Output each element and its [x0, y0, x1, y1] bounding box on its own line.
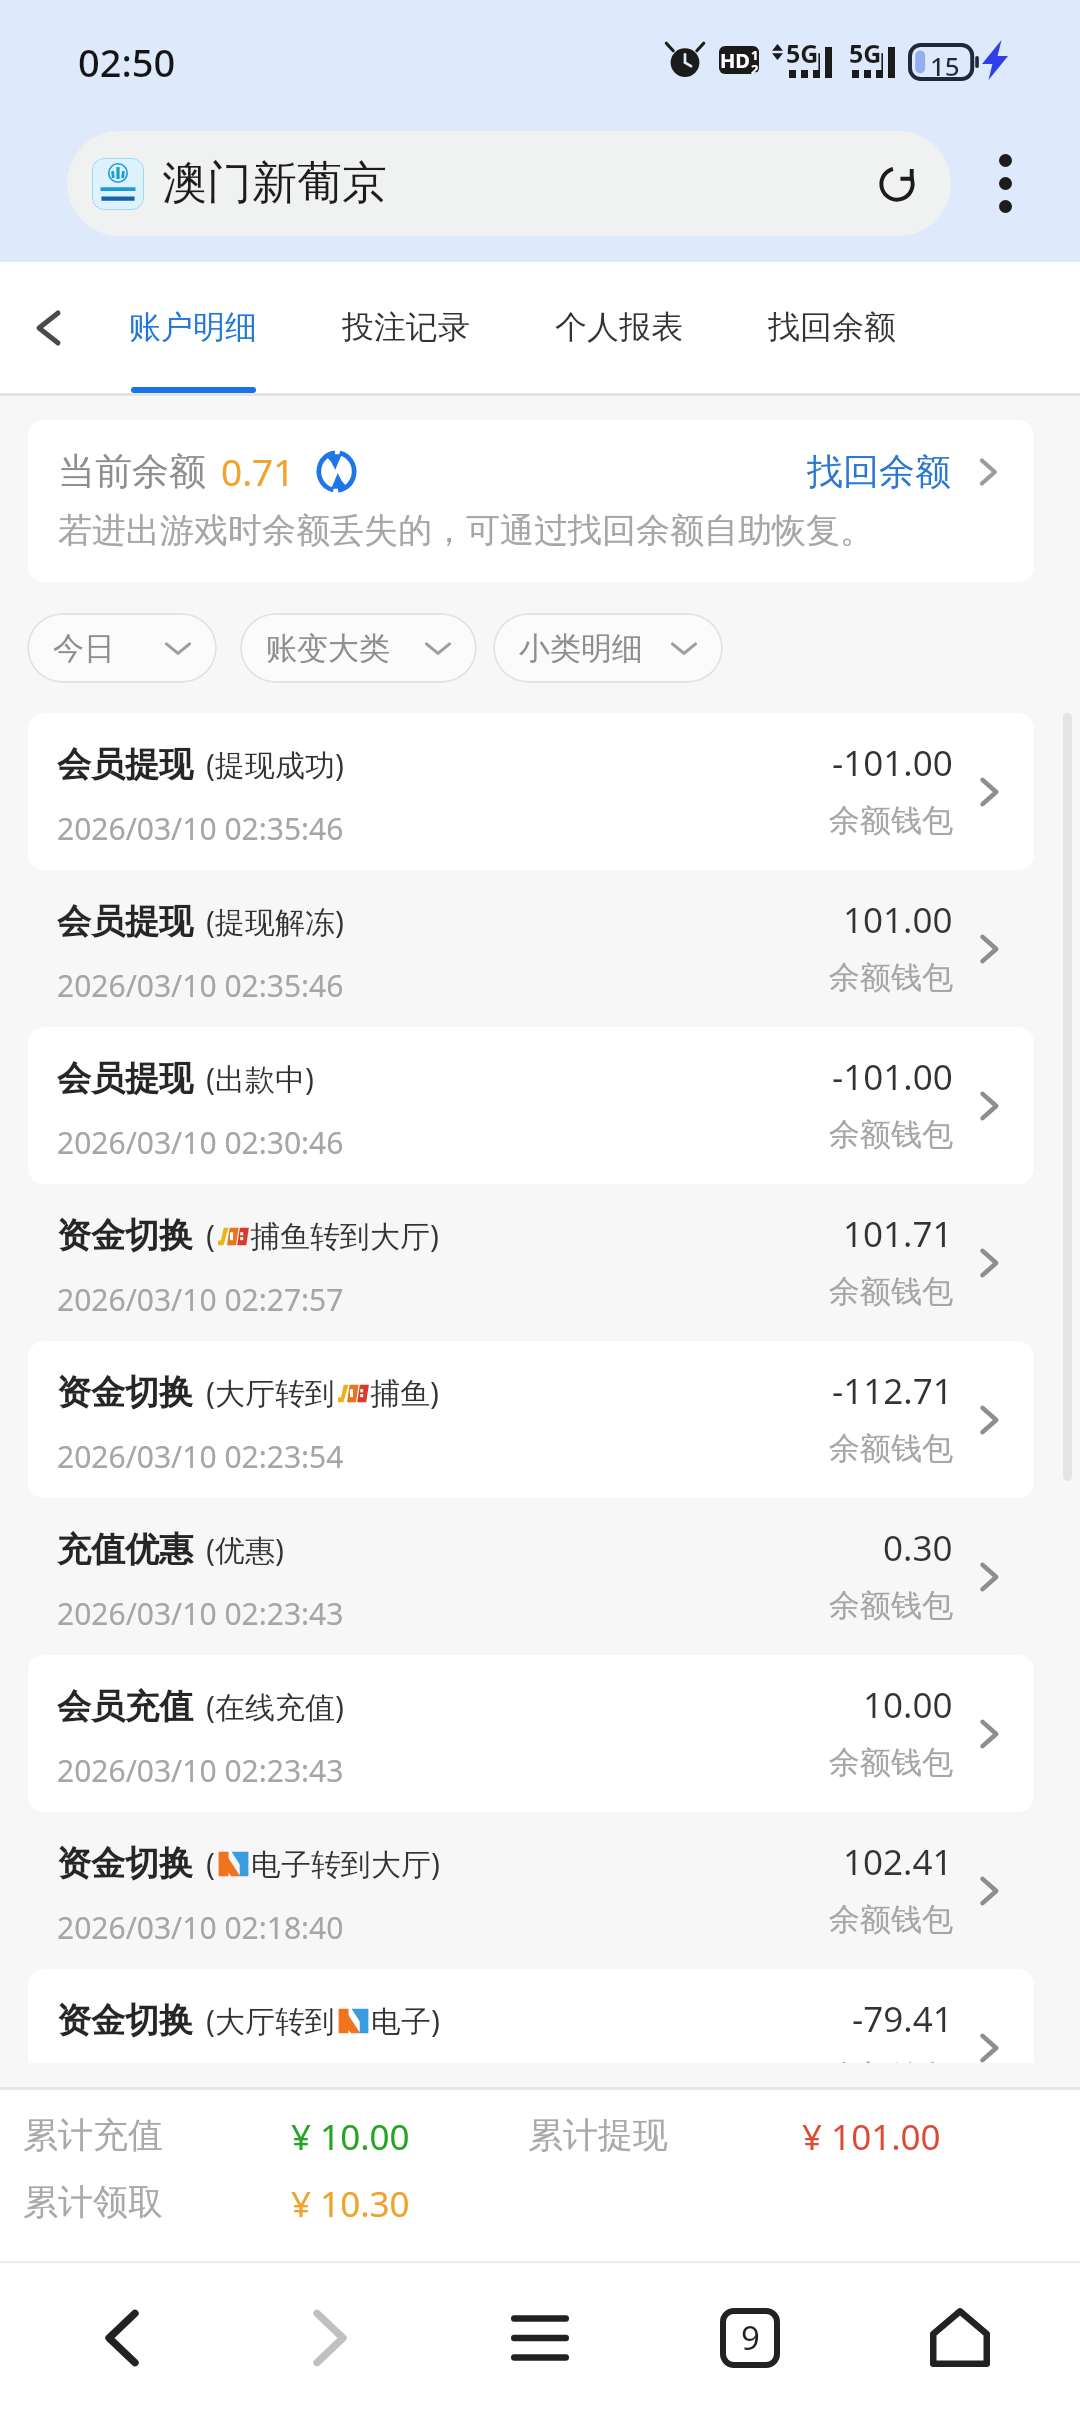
button[interactable]: 充值优惠: [28, 1498, 1034, 1655]
button[interactable]: 今日: [27, 613, 217, 683]
staticText: -101.00: [832, 739, 953, 787]
button[interactable]: Reload page: [859, 146, 935, 222]
staticText: 9: [741, 2315, 760, 2360]
staticText: 5G: [849, 36, 882, 70]
button[interactable]: 资金切换: [28, 1184, 1034, 1341]
staticText: 101.00: [843, 896, 953, 944]
staticText: (优惠): [206, 1529, 284, 1570]
staticText: 10.00: [863, 1681, 953, 1729]
staticText: 0.30: [883, 1524, 953, 1572]
staticText: 账变大类: [266, 629, 390, 668]
staticText: 捕鱼): [370, 1372, 439, 1413]
button[interactable]: 个人报表: [529, 262, 709, 393]
staticText: 102.41: [843, 1838, 953, 1886]
staticText: 余额钱包: [829, 1115, 953, 1154]
button[interactable]: 账变大类: [240, 613, 477, 683]
staticText: 2026/03/10 02:35:46: [57, 808, 344, 849]
staticText: -79.41: [852, 1995, 953, 2043]
staticText: (: [206, 1215, 215, 1256]
staticText: 02:50: [78, 36, 176, 88]
staticText: 2026/03/10 02:35:46: [57, 965, 344, 1006]
button[interactable]: 会员提现: [28, 1027, 1034, 1184]
button[interactable]: Home: [856, 2263, 1064, 2412]
staticText: 2026/03/10 02:30:46: [57, 1122, 344, 1163]
staticText: 账户明细: [129, 307, 257, 347]
staticText: 2026/03/10 02:23:54: [57, 1436, 344, 1477]
button[interactable]: Forward: [226, 2263, 434, 2412]
staticText: ¥ 10.30: [291, 2180, 410, 2228]
button[interactable]: Back: [18, 2263, 226, 2412]
staticText: 资金切换: [57, 1371, 193, 1414]
button[interactable]: 资金切换: [28, 1812, 1034, 1969]
staticText: 余额钱包: [829, 1900, 953, 1939]
staticText: 投注记录: [342, 307, 470, 347]
staticText: 找回余额: [807, 449, 951, 494]
button[interactable]: Refresh balance: [314, 449, 358, 493]
staticText: 2026/03/10 02:23:43: [57, 1593, 344, 1634]
staticText: 15: [930, 48, 960, 83]
staticText: 1: [751, 46, 759, 64]
staticText: 余额钱包: [829, 2057, 953, 2063]
button[interactable]: Menu: [436, 2263, 644, 2412]
staticText: 2: [751, 60, 759, 74]
staticText: 个人报表: [555, 307, 683, 347]
staticText: 电子转到大厅): [251, 1843, 440, 1884]
staticText: -101.00: [832, 1053, 953, 1101]
staticText: -112.71: [832, 1367, 953, 1415]
button[interactable]: Back: [0, 262, 96, 393]
staticText: 捕鱼转到大厅): [250, 1215, 439, 1256]
staticText: ¥ 10.00: [291, 2113, 410, 2161]
staticText: 小类明细: [519, 629, 643, 668]
staticText: 累计领取: [23, 2180, 163, 2224]
staticText: 累计提现: [528, 2113, 668, 2157]
staticText: 2026/03/10 02:23:43: [57, 1750, 344, 1791]
staticText: 0.71: [221, 446, 295, 496]
button[interactable]: 投注记录: [316, 262, 496, 393]
button[interactable]: 小类明细: [493, 613, 723, 683]
staticText: 101.71: [843, 1210, 953, 1258]
staticText: 2026/03/10 02:18:40: [57, 1907, 344, 1948]
staticText: 会员充值: [57, 1685, 193, 1728]
staticText: 资金切换: [57, 1842, 193, 1885]
button[interactable]: More options: [966, 131, 1044, 236]
staticText: 2026/03/10 02:27:57: [57, 1279, 344, 1320]
staticText: 余额钱包: [829, 1429, 953, 1468]
button[interactable]: 账户明细: [103, 262, 283, 393]
staticText: 若进出游戏时余额丢失的，可通过找回余额自助恢复。: [58, 509, 874, 552]
staticText: 会员提现: [57, 1057, 193, 1100]
staticText: 余额钱包: [829, 1743, 953, 1782]
staticText: 资金切换: [57, 1999, 193, 2042]
staticText: 充值优惠: [57, 1528, 193, 1571]
staticText: 会员提现: [57, 743, 193, 786]
button[interactable]: 资金切换: [28, 1969, 1034, 2063]
staticText: (提现解冻): [206, 901, 344, 942]
button[interactable]: 找回余额: [807, 449, 1006, 494]
button[interactable]: Tabs, 9 open: [646, 2263, 854, 2412]
button[interactable]: 找回余额: [742, 262, 922, 393]
staticText: 5G: [786, 36, 819, 70]
staticText: 当前余额: [58, 448, 206, 495]
button[interactable]: 澳门新葡京: [67, 131, 951, 236]
staticText: HD: [720, 47, 750, 74]
staticText: (大厅转到: [206, 2000, 335, 2041]
staticText: (出款中): [206, 1058, 314, 1099]
staticText: 余额钱包: [829, 1586, 953, 1625]
staticText: (大厅转到: [206, 1372, 335, 1413]
staticText: (提现成功): [206, 744, 344, 785]
staticText: (在线充值): [206, 1686, 344, 1727]
button[interactable]: 资金切换: [28, 1341, 1034, 1498]
staticText: 找回余额: [768, 307, 896, 347]
staticText: ¥ 101.00: [802, 2113, 941, 2161]
button[interactable]: 会员提现: [28, 870, 1034, 1027]
button[interactable]: 会员提现: [28, 713, 1034, 870]
staticText: 余额钱包: [829, 801, 953, 840]
staticText: 累计充值: [23, 2113, 163, 2157]
staticText: 电子): [371, 2000, 440, 2041]
staticText: 今日: [53, 629, 115, 668]
staticText: 会员提现: [57, 900, 193, 943]
staticText: 余额钱包: [829, 958, 953, 997]
staticText: 资金切换: [57, 1214, 193, 1257]
staticText: 澳门新葡京: [162, 155, 387, 212]
staticText: (: [206, 1843, 215, 1884]
button[interactable]: 会员充值: [28, 1655, 1034, 1812]
